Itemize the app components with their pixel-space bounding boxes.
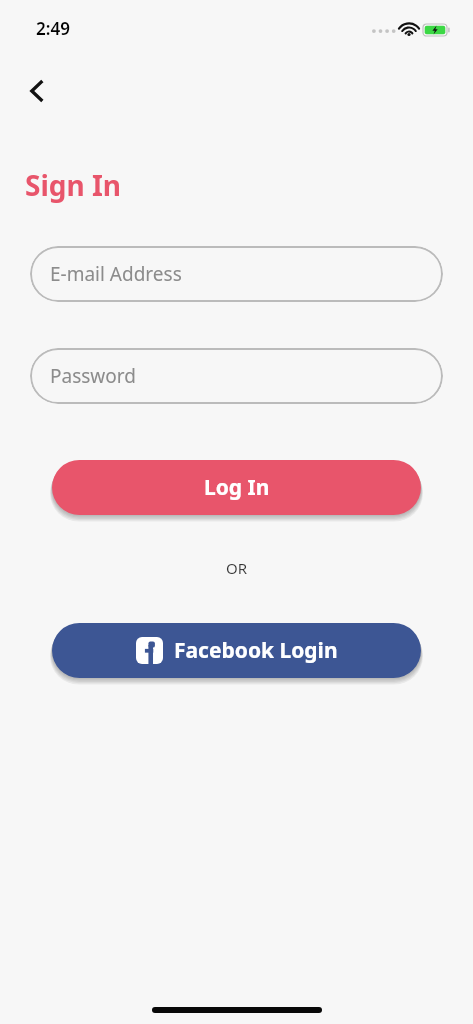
button[interactable]: Facebook Login (52, 623, 421, 678)
staticText: OR (226, 558, 248, 578)
staticText: Log In (204, 473, 270, 502)
button[interactable]: Back (12, 66, 62, 116)
staticText: Facebook Login (174, 636, 338, 665)
staticText: Sign In (25, 166, 122, 204)
staticText: 2:49 (36, 17, 70, 40)
staticText: Password (50, 363, 136, 389)
button[interactable]: Password (30, 348, 443, 404)
staticText: E-mail Address (50, 261, 182, 287)
button[interactable]: E-mail Address (30, 246, 443, 302)
button[interactable]: Log In (52, 460, 421, 515)
